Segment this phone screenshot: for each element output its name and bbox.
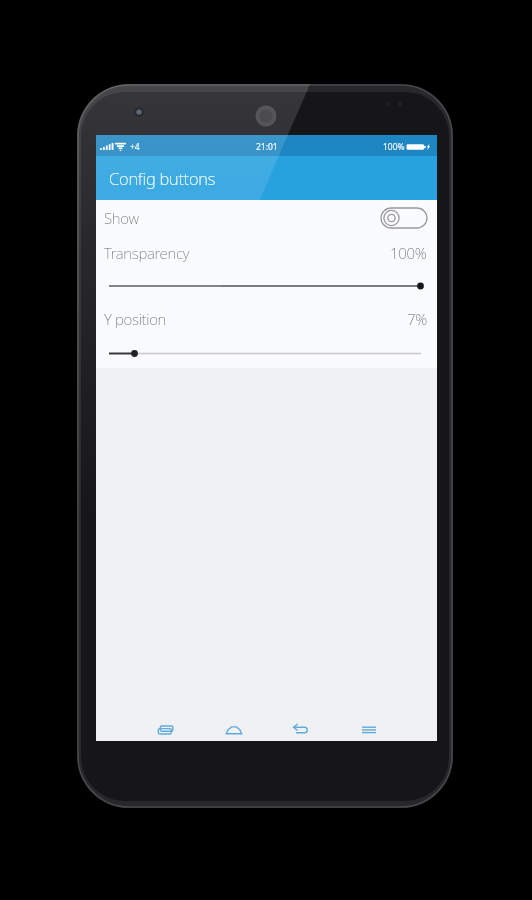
staticText: 100% [390,243,427,263]
staticText: Transparency [104,243,190,263]
button[interactable] [217,719,251,741]
staticText: 21:01 [256,141,278,153]
button[interactable]: Y position [96,308,437,330]
button[interactable]: Show [96,208,437,228]
button[interactable]: Transparency [96,242,437,264]
button[interactable] [381,208,427,228]
button[interactable] [148,719,182,741]
staticText: 7% [407,309,427,329]
button[interactable] [284,719,318,741]
staticText: Y position [104,309,167,329]
staticText: Config buttons [109,167,216,189]
button[interactable] [106,278,424,294]
staticText: +4 [130,141,140,153]
button[interactable] [352,719,386,741]
button[interactable] [106,345,424,361]
staticText: Show [104,208,139,228]
staticText: 100% [383,141,405,153]
button[interactable]: Config buttons [96,156,437,200]
